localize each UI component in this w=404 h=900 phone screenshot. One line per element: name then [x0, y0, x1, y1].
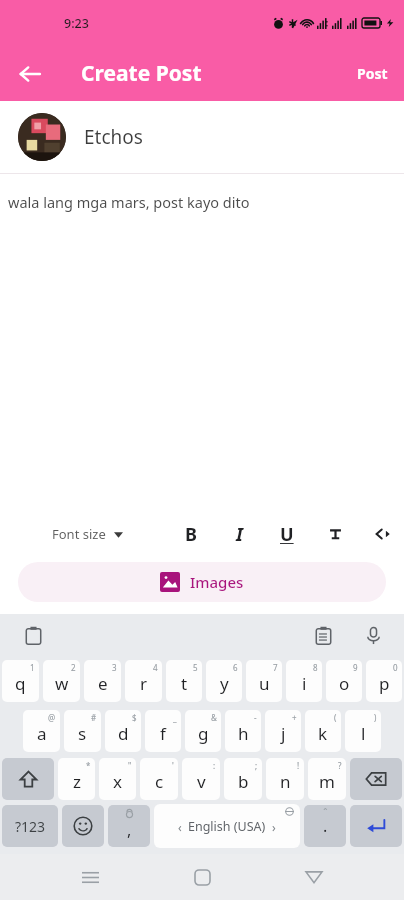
button[interactable]: ( [305, 710, 341, 752]
button[interactable]: Bold [174, 517, 208, 551]
button[interactable]: : [182, 758, 220, 800]
staticText: 7 [273, 662, 278, 673]
button[interactable]: 8 [286, 660, 322, 702]
staticText: f [160, 722, 166, 745]
button[interactable]: ! [266, 758, 304, 800]
staticText: › [272, 819, 276, 835]
staticText: ?123 [15, 817, 46, 836]
button[interactable]: Voice input [358, 620, 388, 650]
button[interactable]: Underline [270, 517, 304, 551]
button[interactable]: Emoji [62, 805, 104, 847]
staticText: 8 [313, 662, 318, 673]
button[interactable]: Font size [48, 521, 127, 547]
button[interactable]: 7 [246, 660, 282, 702]
staticText: o [339, 672, 350, 695]
staticText: l [361, 722, 366, 745]
staticText: English (USA) [188, 818, 266, 835]
button[interactable]: $ [105, 710, 141, 752]
button[interactable]: Strikethrough [318, 517, 352, 551]
staticText: 3 [112, 662, 117, 673]
staticText: + [292, 712, 297, 723]
button[interactable]: - [225, 710, 261, 752]
button[interactable]: ‹ [154, 804, 300, 848]
button[interactable]: @ [23, 710, 60, 752]
staticText: * [86, 760, 91, 771]
staticText: ⌃ [322, 807, 329, 816]
button[interactable]: Back [292, 855, 336, 899]
staticText: s [78, 722, 87, 745]
staticText: k [318, 722, 328, 745]
staticText: x [113, 770, 122, 793]
staticText: . [323, 815, 328, 837]
staticText: p [379, 672, 390, 695]
button[interactable]: ? [308, 758, 346, 800]
staticText: m [319, 770, 335, 793]
button[interactable]: ' [140, 758, 178, 800]
staticText: a [37, 722, 47, 745]
button[interactable]: Post [347, 58, 398, 89]
staticText: 1 [30, 662, 35, 673]
staticText: Etchos [84, 124, 143, 150]
button[interactable]: Images [18, 562, 386, 602]
staticText: 9 [353, 662, 358, 673]
staticText: d [118, 722, 129, 745]
staticText: r [140, 672, 148, 695]
staticText: - [254, 712, 257, 723]
button[interactable]: wala lang mga mars, post kayo dito [0, 174, 404, 234]
staticText: ' [172, 760, 174, 771]
staticText: 6 [233, 662, 238, 673]
staticText: Create Post [81, 59, 202, 88]
staticText: b [238, 770, 249, 793]
staticText: ; [255, 760, 258, 771]
staticText: Font size [52, 525, 106, 543]
button[interactable]: & [185, 710, 221, 752]
button[interactable]: Comma [108, 805, 150, 847]
staticText: c [155, 770, 164, 793]
button[interactable]: 0 [366, 660, 402, 702]
button[interactable]: 1 [2, 660, 39, 702]
button[interactable]: Clipboard [18, 620, 48, 650]
staticText: t [181, 672, 188, 695]
button[interactable]: Code [366, 517, 400, 551]
button[interactable]: * [58, 758, 95, 800]
button[interactable]: Backspace [350, 758, 402, 800]
staticText: & [211, 712, 217, 723]
button[interactable]: 9 [326, 660, 362, 702]
staticText: ‹ [178, 819, 182, 835]
button[interactable]: Etchos [0, 101, 404, 173]
staticText: " [128, 760, 132, 771]
staticText: z [73, 770, 81, 793]
staticText: i [302, 672, 307, 695]
button[interactable]: + [265, 710, 301, 752]
button[interactable]: Paste [308, 620, 338, 650]
button[interactable]: _ [145, 710, 181, 752]
button[interactable]: ) [345, 710, 381, 752]
button[interactable]: ; [224, 758, 262, 800]
staticText: 2 [71, 662, 76, 673]
staticText: : [213, 760, 216, 771]
button[interactable]: Back [8, 52, 52, 96]
button[interactable]: Shift [2, 758, 54, 800]
staticText: ? [338, 760, 342, 771]
button[interactable]: Italic [222, 517, 256, 551]
staticText: wala lang mga mars, post kayo dito [8, 192, 250, 212]
button[interactable]: Recent apps [68, 855, 112, 899]
staticText: U [280, 522, 294, 547]
staticText: ! [297, 760, 300, 771]
button[interactable]: 4 [125, 660, 162, 702]
staticText: @ [48, 712, 56, 723]
button[interactable]: 3 [84, 660, 121, 702]
button[interactable]: 6 [206, 660, 242, 702]
button[interactable]: 5 [166, 660, 202, 702]
staticText: 0 [393, 662, 398, 673]
button[interactable]: Enter [350, 805, 402, 847]
staticText: w [55, 672, 69, 695]
button[interactable]: # [64, 710, 101, 752]
button[interactable]: 2 [43, 660, 80, 702]
button[interactable]: Symbols [2, 805, 58, 847]
button[interactable]: Period [304, 805, 346, 847]
button[interactable]: Home [180, 855, 224, 899]
staticText: 4 [153, 662, 158, 673]
button[interactable]: " [99, 758, 136, 800]
staticText: n [280, 770, 291, 793]
